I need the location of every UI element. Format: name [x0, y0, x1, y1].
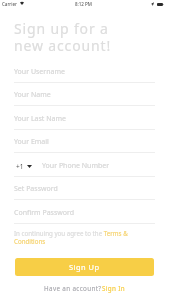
staticText: Carrier [2, 1, 17, 7]
staticText: Your Phone Number [42, 161, 110, 171]
staticText: Set Password [14, 184, 58, 194]
staticText: Sign Up [69, 262, 100, 272]
button[interactable]: +1 [14, 160, 155, 177]
button[interactable]: Your Last Name [14, 113, 155, 130]
button[interactable]: Sign In [102, 284, 125, 293]
staticText: Have an account? [44, 284, 102, 293]
staticText: Your Name [14, 90, 51, 100]
button[interactable]: Your Email [14, 136, 155, 153]
button[interactable]: Your Username [14, 66, 155, 83]
button[interactable]: Confirm Password [14, 207, 155, 224]
other: Wi-Fi signal [20, 2, 24, 5]
staticText: Sign In [102, 284, 125, 293]
staticText: Sign up for a new account! [14, 19, 111, 55]
staticText: Your Username [14, 67, 65, 77]
staticText: Your Email [14, 137, 49, 147]
staticText: In continuing you agree to the Terms & C… [14, 229, 155, 245]
other: Battery [157, 3, 164, 6]
staticText: Confirm Password [14, 208, 75, 218]
other: Location [151, 2, 154, 6]
staticText: +1 [16, 162, 24, 171]
staticText: 8:12 PM [75, 1, 92, 7]
button[interactable]: Sign Up [15, 258, 154, 276]
button[interactable]: Your Name [14, 89, 155, 106]
button[interactable]: Set Password [14, 183, 155, 200]
staticText: Your Last Name [14, 114, 66, 124]
